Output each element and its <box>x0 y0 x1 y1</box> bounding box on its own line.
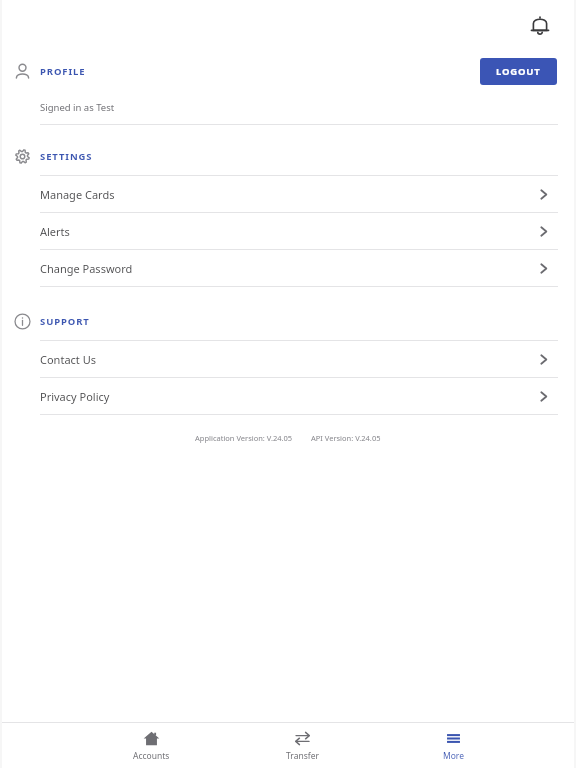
staticText: Change Password <box>40 261 133 276</box>
button[interactable]: LOGOUT <box>480 58 557 85</box>
staticText: Alerts <box>40 224 70 239</box>
staticText: More <box>443 750 464 762</box>
staticText: Contact Us <box>40 352 96 367</box>
staticText: Accounts <box>133 750 170 762</box>
staticText: LOGOUT <box>496 65 541 78</box>
button[interactable]: Notifications <box>522 8 558 44</box>
staticText: PROFILE <box>40 65 86 78</box>
staticText: Privacy Policy <box>40 389 110 404</box>
button[interactable]: Manage Cards <box>2 176 574 212</box>
button[interactable]: Contact Us <box>2 341 574 377</box>
staticText: Signed in as Test <box>40 101 115 114</box>
button[interactable]: More <box>378 726 529 766</box>
staticText: SUPPORT <box>40 315 90 328</box>
staticText: Manage Cards <box>40 187 115 202</box>
button[interactable]: Privacy Policy <box>2 378 574 414</box>
button[interactable]: Change Password <box>2 250 574 286</box>
button[interactable]: Transfer <box>227 726 378 766</box>
staticText: SETTINGS <box>40 150 93 163</box>
staticText: Application Version: V.24.05 <box>195 433 293 443</box>
staticText: Transfer <box>286 750 319 762</box>
staticText: API Version: V.24.05 <box>311 433 381 443</box>
button[interactable]: Alerts <box>2 213 574 249</box>
button[interactable]: Accounts <box>76 726 227 766</box>
